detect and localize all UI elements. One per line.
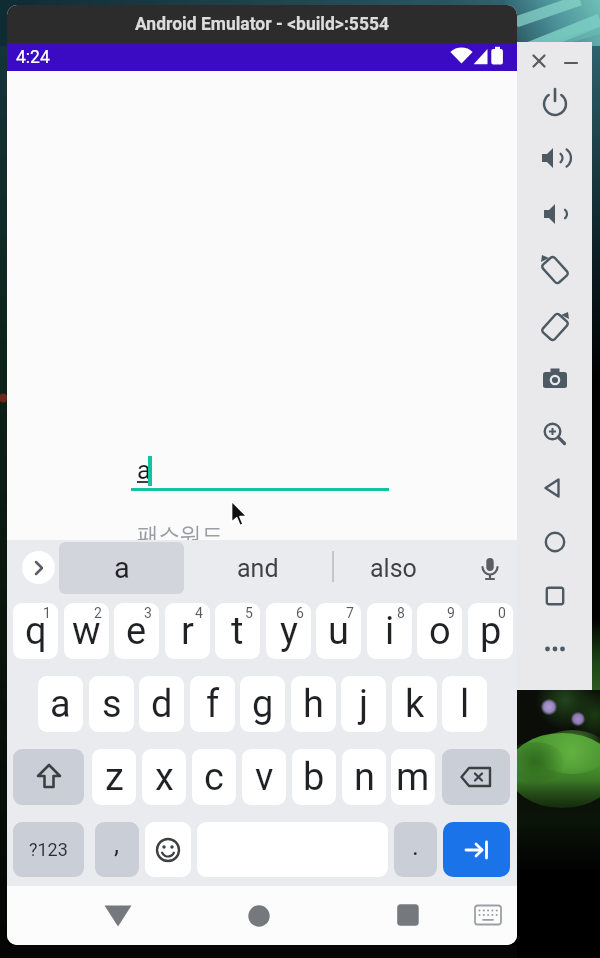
staticText: also [370, 554, 417, 583]
button[interactable]: q [13, 603, 58, 659]
button[interactable] [535, 307, 575, 347]
button[interactable]: , [95, 822, 139, 877]
staticText: b [303, 755, 325, 800]
staticText: k [405, 682, 425, 727]
button[interactable]: and [184, 542, 332, 594]
staticText: 9 [447, 605, 455, 621]
staticText: 8 [397, 605, 405, 621]
staticText: i [385, 609, 395, 654]
staticText: m [396, 755, 430, 800]
staticText: ?123 [29, 839, 68, 860]
staticText: z [105, 755, 124, 800]
staticText: 2 [94, 605, 102, 621]
button[interactable] [473, 550, 506, 590]
button[interactable] [98, 896, 138, 936]
staticText: l [460, 682, 470, 727]
staticText: 7 [346, 605, 354, 621]
staticText: 5 [245, 605, 253, 621]
button[interactable]: a [59, 542, 184, 594]
button[interactable] [535, 629, 575, 669]
staticText: 패스워드 [137, 521, 223, 548]
button[interactable] [13, 749, 84, 805]
button[interactable] [533, 468, 573, 508]
button[interactable]: v [242, 749, 286, 805]
staticText: 4 [195, 605, 203, 621]
button[interactable]: l [442, 676, 487, 732]
staticText: 4:24 [16, 47, 50, 68]
button[interactable] [535, 138, 575, 178]
button[interactable]: m [391, 749, 435, 805]
button[interactable] [535, 522, 575, 562]
staticText: t [231, 609, 244, 654]
staticText: . [412, 831, 419, 861]
staticText: y [280, 609, 298, 654]
button[interactable]: o [417, 603, 462, 659]
staticText: h [303, 682, 324, 727]
staticText: a [50, 682, 71, 727]
staticText: n [354, 755, 375, 800]
button[interactable] [535, 359, 575, 399]
button[interactable] [239, 896, 279, 936]
button[interactable]: y [266, 603, 311, 659]
staticText: w [72, 609, 101, 654]
staticText: q [25, 609, 47, 654]
button[interactable]: ?123 [13, 822, 84, 877]
staticText: o [429, 609, 451, 654]
staticText: and [237, 554, 279, 583]
button[interactable] [535, 576, 575, 616]
staticText: c [204, 755, 224, 800]
button[interactable]: t [215, 603, 260, 659]
button[interactable]: w [64, 603, 109, 659]
button[interactable] [388, 895, 428, 935]
button[interactable]: s [89, 676, 134, 732]
staticText: v [255, 755, 274, 800]
button[interactable]: x [142, 749, 186, 805]
button[interactable] [535, 250, 575, 290]
staticText: Android Emulator - <build>:5554 [135, 14, 390, 35]
button[interactable]: i [367, 603, 412, 659]
staticText: a [137, 456, 151, 485]
button[interactable]: f [190, 676, 235, 732]
button[interactable] [535, 194, 575, 234]
staticText: d [151, 682, 173, 727]
staticText: 3 [144, 605, 152, 621]
button[interactable]: d [139, 676, 184, 732]
button[interactable] [551, 41, 591, 81]
button[interactable] [22, 551, 55, 584]
staticText: j [359, 682, 369, 727]
button[interactable] [442, 749, 510, 805]
button[interactable]: p [468, 603, 513, 659]
button[interactable] [145, 822, 191, 877]
button[interactable]: c [192, 749, 236, 805]
button[interactable]: r [165, 603, 210, 659]
staticText: g [252, 682, 274, 727]
staticText: , [114, 829, 120, 859]
button[interactable]: k [392, 676, 437, 732]
staticText: 0 [498, 605, 506, 621]
button[interactable] [468, 895, 508, 935]
staticText: a [114, 551, 130, 585]
staticText: f [206, 682, 220, 727]
button[interactable]: g [240, 676, 285, 732]
button[interactable]: h [291, 676, 336, 732]
staticText: u [328, 609, 349, 654]
button[interactable]: b [292, 749, 336, 805]
staticText: e [126, 609, 147, 654]
button[interactable]: . [394, 822, 437, 877]
button[interactable] [535, 414, 575, 454]
staticText: r [181, 609, 194, 654]
button[interactable]: j [341, 676, 386, 732]
staticText: 1 [43, 605, 51, 621]
button[interactable]: n [342, 749, 386, 805]
button[interactable]: a [38, 676, 83, 732]
button[interactable] [443, 822, 510, 877]
button[interactable]: z [92, 749, 136, 805]
button[interactable] [535, 82, 575, 122]
button[interactable] [519, 41, 559, 81]
button[interactable]: also [334, 542, 452, 594]
staticText: s [102, 682, 122, 727]
button[interactable]: u [316, 603, 361, 659]
staticText: x [155, 755, 174, 800]
button[interactable]: e [114, 603, 159, 659]
